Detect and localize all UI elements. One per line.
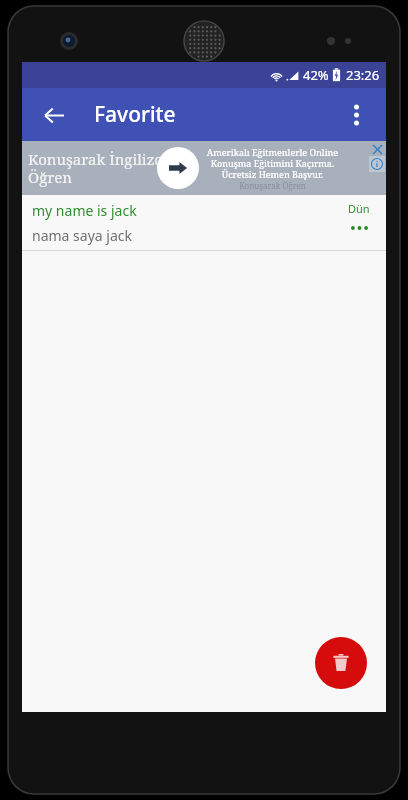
staticText: Konuşarak İngilizce Öğren — [28, 149, 170, 188]
staticText: nama saya jack — [32, 226, 132, 245]
staticText: Amerikalı Eğitmenlerle Online Konuşma Eğ… — [205, 146, 340, 180]
staticText: 42% — [303, 66, 329, 84]
button[interactable]: Ad info — [369, 156, 385, 172]
button[interactable]: More options — [334, 93, 378, 137]
button[interactable]: Back — [32, 93, 76, 137]
button[interactable]: Delete — [315, 637, 367, 689]
staticText: my name is jack — [32, 201, 137, 220]
staticText: Favorite — [94, 100, 176, 129]
staticText: Dün — [348, 201, 370, 216]
button[interactable]: Item options — [346, 221, 372, 235]
button[interactable]: Close ad — [370, 142, 384, 156]
staticText: Konuşarak Öğren — [239, 180, 306, 191]
staticText: 23:26 — [346, 66, 380, 84]
button[interactable]: my name is jack — [22, 195, 386, 250]
button[interactable]: Konuşarak İngilizce Öğren — [22, 141, 386, 195]
